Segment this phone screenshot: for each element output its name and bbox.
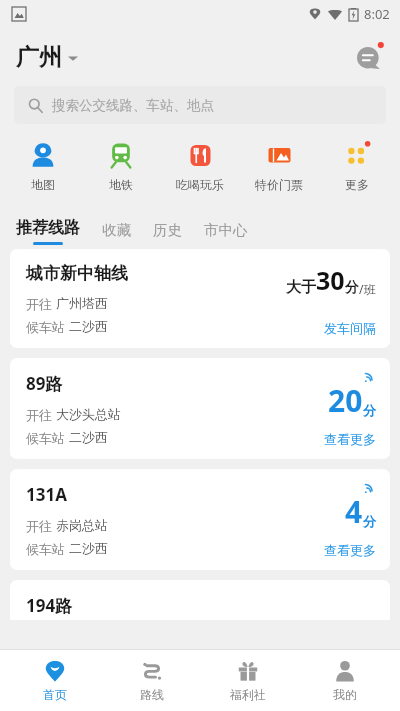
staticText: 市中心 <box>204 221 248 239</box>
staticText: 30 <box>316 263 345 297</box>
staticText: 更多 <box>345 177 369 192</box>
staticText: 推荐线路 <box>16 218 80 238</box>
staticText: 路线 <box>140 687 164 702</box>
button[interactable]: 推荐线路 <box>16 218 80 245</box>
staticText: 广州塔西 <box>56 295 108 311</box>
staticText: 大沙头总站 <box>56 406 121 422</box>
staticText: 大于 <box>286 278 316 297</box>
staticText: 搜索公交线路、车站、地点 <box>52 97 214 114</box>
button[interactable]: 更多 <box>321 138 393 194</box>
button[interactable]: 地铁 <box>85 138 157 194</box>
button[interactable]: 查看更多 <box>324 431 376 447</box>
staticText: 开往 <box>26 517 56 535</box>
staticText: 赤岗总站 <box>56 517 108 533</box>
staticText: 查看更多 <box>324 542 376 558</box>
staticText: 福利社 <box>230 687 266 702</box>
button[interactable]: 我的 <box>303 650 387 711</box>
staticText: /班 <box>359 281 376 297</box>
button[interactable]: 发车间隔 <box>324 320 376 336</box>
staticText: 开往 <box>26 295 56 313</box>
button[interactable]: 搜索公交线路、车站、地点 <box>14 86 386 124</box>
staticText: 发车间隔 <box>324 320 376 336</box>
button[interactable]: Messages <box>352 39 388 75</box>
staticText: 194路 <box>26 594 73 617</box>
staticText: 候车站 <box>26 318 69 336</box>
staticText: 地铁 <box>109 177 133 192</box>
staticText: 分 <box>363 513 376 529</box>
staticText: 查看更多 <box>324 431 376 447</box>
button[interactable]: 路线 <box>110 650 194 711</box>
staticText: 特价门票 <box>255 177 303 192</box>
staticText: 二沙西 <box>69 540 108 556</box>
staticText: 89路 <box>26 372 63 395</box>
staticText: 我的 <box>333 687 357 702</box>
button[interactable]: 吃喝玩乐 <box>164 138 236 194</box>
button[interactable]: 首页 <box>13 650 97 711</box>
staticText: 20 <box>328 380 363 421</box>
staticText: 收藏 <box>102 221 131 239</box>
button[interactable]: 特价门票 <box>243 138 315 194</box>
staticText: 二沙西 <box>69 429 108 445</box>
staticText: 8:02 <box>364 5 390 23</box>
staticText: 吃喝玩乐 <box>176 177 224 192</box>
staticText: 分 <box>345 279 359 297</box>
staticText: 4 <box>345 491 363 532</box>
staticText: 候车站 <box>26 429 69 447</box>
button[interactable]: 广州 <box>16 43 78 72</box>
button[interactable]: 194路 <box>10 580 390 620</box>
button[interactable]: 市中心 <box>204 221 248 245</box>
button[interactable]: 131A <box>10 469 390 570</box>
button[interactable]: 福利社 <box>206 650 290 711</box>
staticText: 历史 <box>153 221 182 239</box>
button[interactable]: 收藏 <box>102 221 131 245</box>
staticText: 开往 <box>26 406 56 424</box>
button[interactable]: 查看更多 <box>324 542 376 558</box>
staticText: 城市新中轴线 <box>26 263 128 284</box>
button[interactable]: 89路 <box>10 358 390 459</box>
button[interactable]: 历史 <box>153 221 182 245</box>
staticText: 131A <box>26 483 67 506</box>
staticText: 广州 <box>16 43 62 72</box>
staticText: 地图 <box>31 177 55 192</box>
staticText: 二沙西 <box>69 318 108 334</box>
staticText: 分 <box>363 402 376 418</box>
staticText: 首页 <box>43 687 67 702</box>
button[interactable]: 城市新中轴线 <box>10 249 390 348</box>
staticText: 候车站 <box>26 540 69 558</box>
button[interactable]: 地图 <box>7 138 79 194</box>
